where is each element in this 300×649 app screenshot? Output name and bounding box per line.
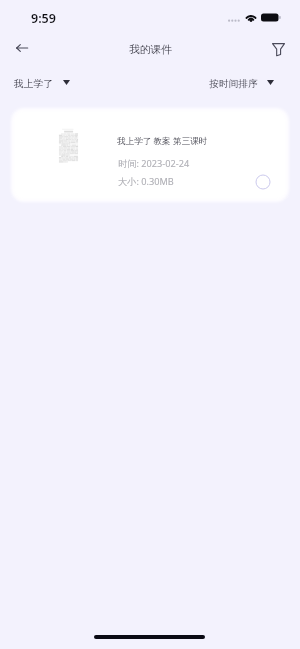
staticText: 按时间排序 [209, 78, 258, 90]
button[interactable]: 我上学了 [8, 73, 76, 95]
staticText: 我上学了 教案 第三课时 [117, 135, 208, 147]
staticText: 大小: 0.30MB [118, 175, 174, 188]
staticText: 我的课件 [129, 43, 172, 56]
staticText: 9:59 [31, 10, 56, 27]
button[interactable]: Filter [262, 33, 294, 65]
staticText: 我上学了 [14, 78, 54, 90]
button[interactable]: Back [6, 32, 38, 64]
button[interactable]: 我上学了 教案 第三课时 [15, 112, 285, 198]
button[interactable]: 按时间排序 [203, 73, 280, 95]
staticText: 时间: 2023-02-24 [118, 157, 190, 170]
button[interactable]: Select [253, 172, 272, 191]
